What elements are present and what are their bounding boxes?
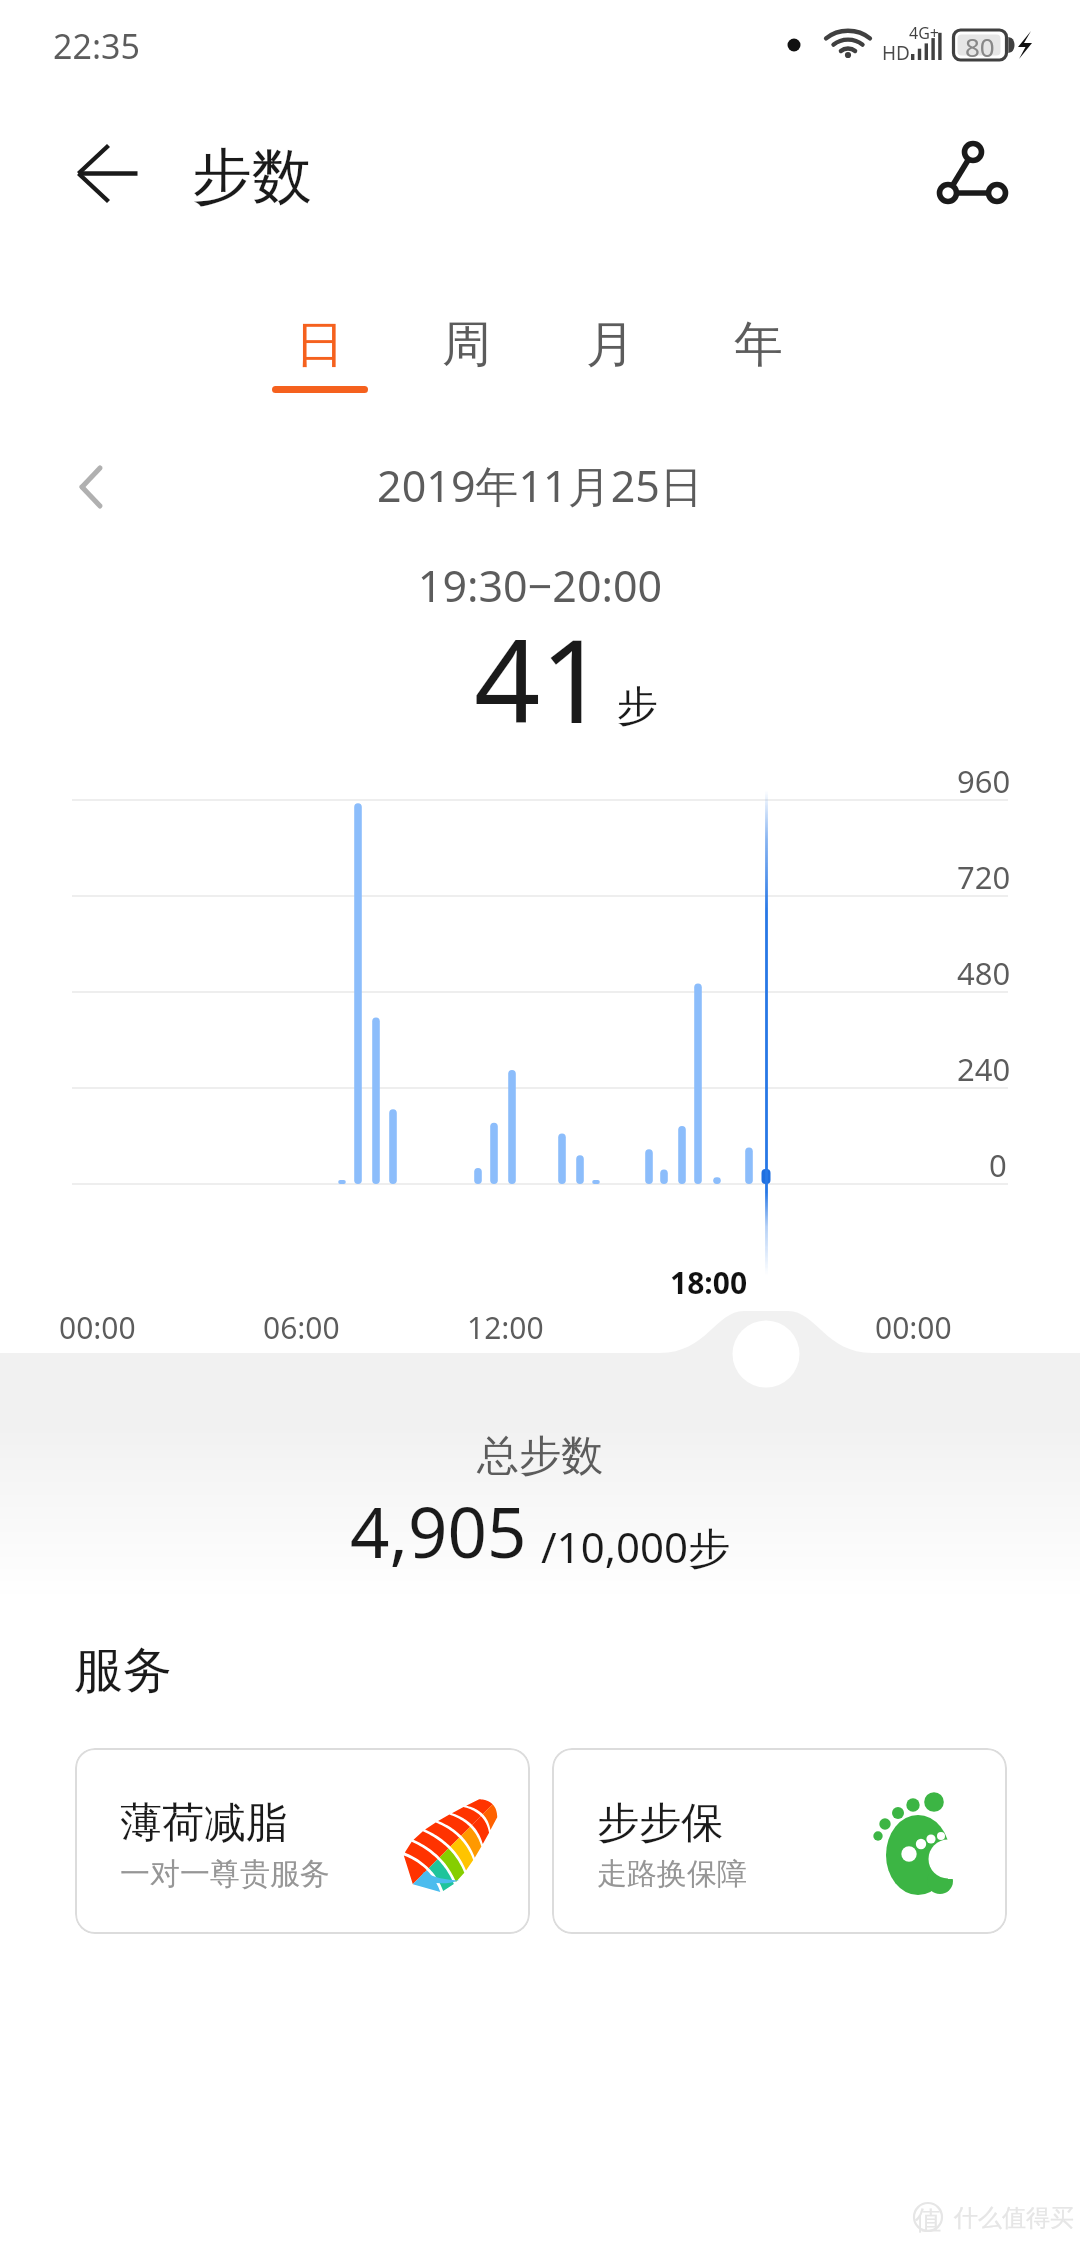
staticText: HD [882,40,910,66]
staticText: 一对一尊贵服务 [120,1855,330,1893]
staticText: 00:00 [875,1307,952,1348]
staticText: 0 [989,1144,1007,1186]
staticText: 薄荷减脂 [120,1797,288,1850]
staticText: 服务 [74,1640,172,1702]
staticText: 06:00 [263,1307,340,1348]
button[interactable]: 日 [257,290,381,400]
button[interactable]: 步步保 [552,1748,1007,1934]
staticText: 80 [965,29,995,61]
staticText: 720 [957,856,1011,898]
staticText: 960 [957,760,1011,802]
staticText: 12:00 [467,1307,544,1348]
staticText: 年 [734,314,783,376]
staticText: 00:00 [59,1307,136,1348]
staticText: 步数 [192,139,312,215]
staticText: 41 [474,599,607,757]
staticText: 4G+ [909,22,939,44]
button[interactable]: 年 [696,290,820,400]
button[interactable]: Share [920,120,1026,226]
staticText: 480 [957,952,1011,994]
staticText: 值 [915,2204,941,2237]
staticText: 240 [957,1048,1011,1090]
staticText: 18:00 [670,1262,748,1303]
staticText: 19:30−20:00 [0,556,1080,615]
button[interactable]: Back [55,120,161,226]
staticText: 月 [586,314,635,376]
staticText: 22:35 [53,23,140,69]
staticText: 步步保 [597,1797,723,1850]
staticText: 日 [295,314,344,376]
button[interactable]: 薄荷减脂 [75,1748,530,1934]
staticText: 走路换保障 [597,1855,747,1893]
button[interactable]: Previous day [58,452,128,522]
staticText: 总步数 [0,1430,1080,1483]
staticText: /10,000步 [541,1518,731,1575]
staticText: 步 [617,681,658,733]
button[interactable]: 周 [404,290,528,400]
staticText: 4,905 [350,1484,527,1578]
staticText: 2019年11月25日 [0,456,1080,515]
staticText: 什么值得买 [954,2203,1074,2233]
button[interactable]: 月 [548,290,672,400]
staticText: 周 [442,314,491,376]
